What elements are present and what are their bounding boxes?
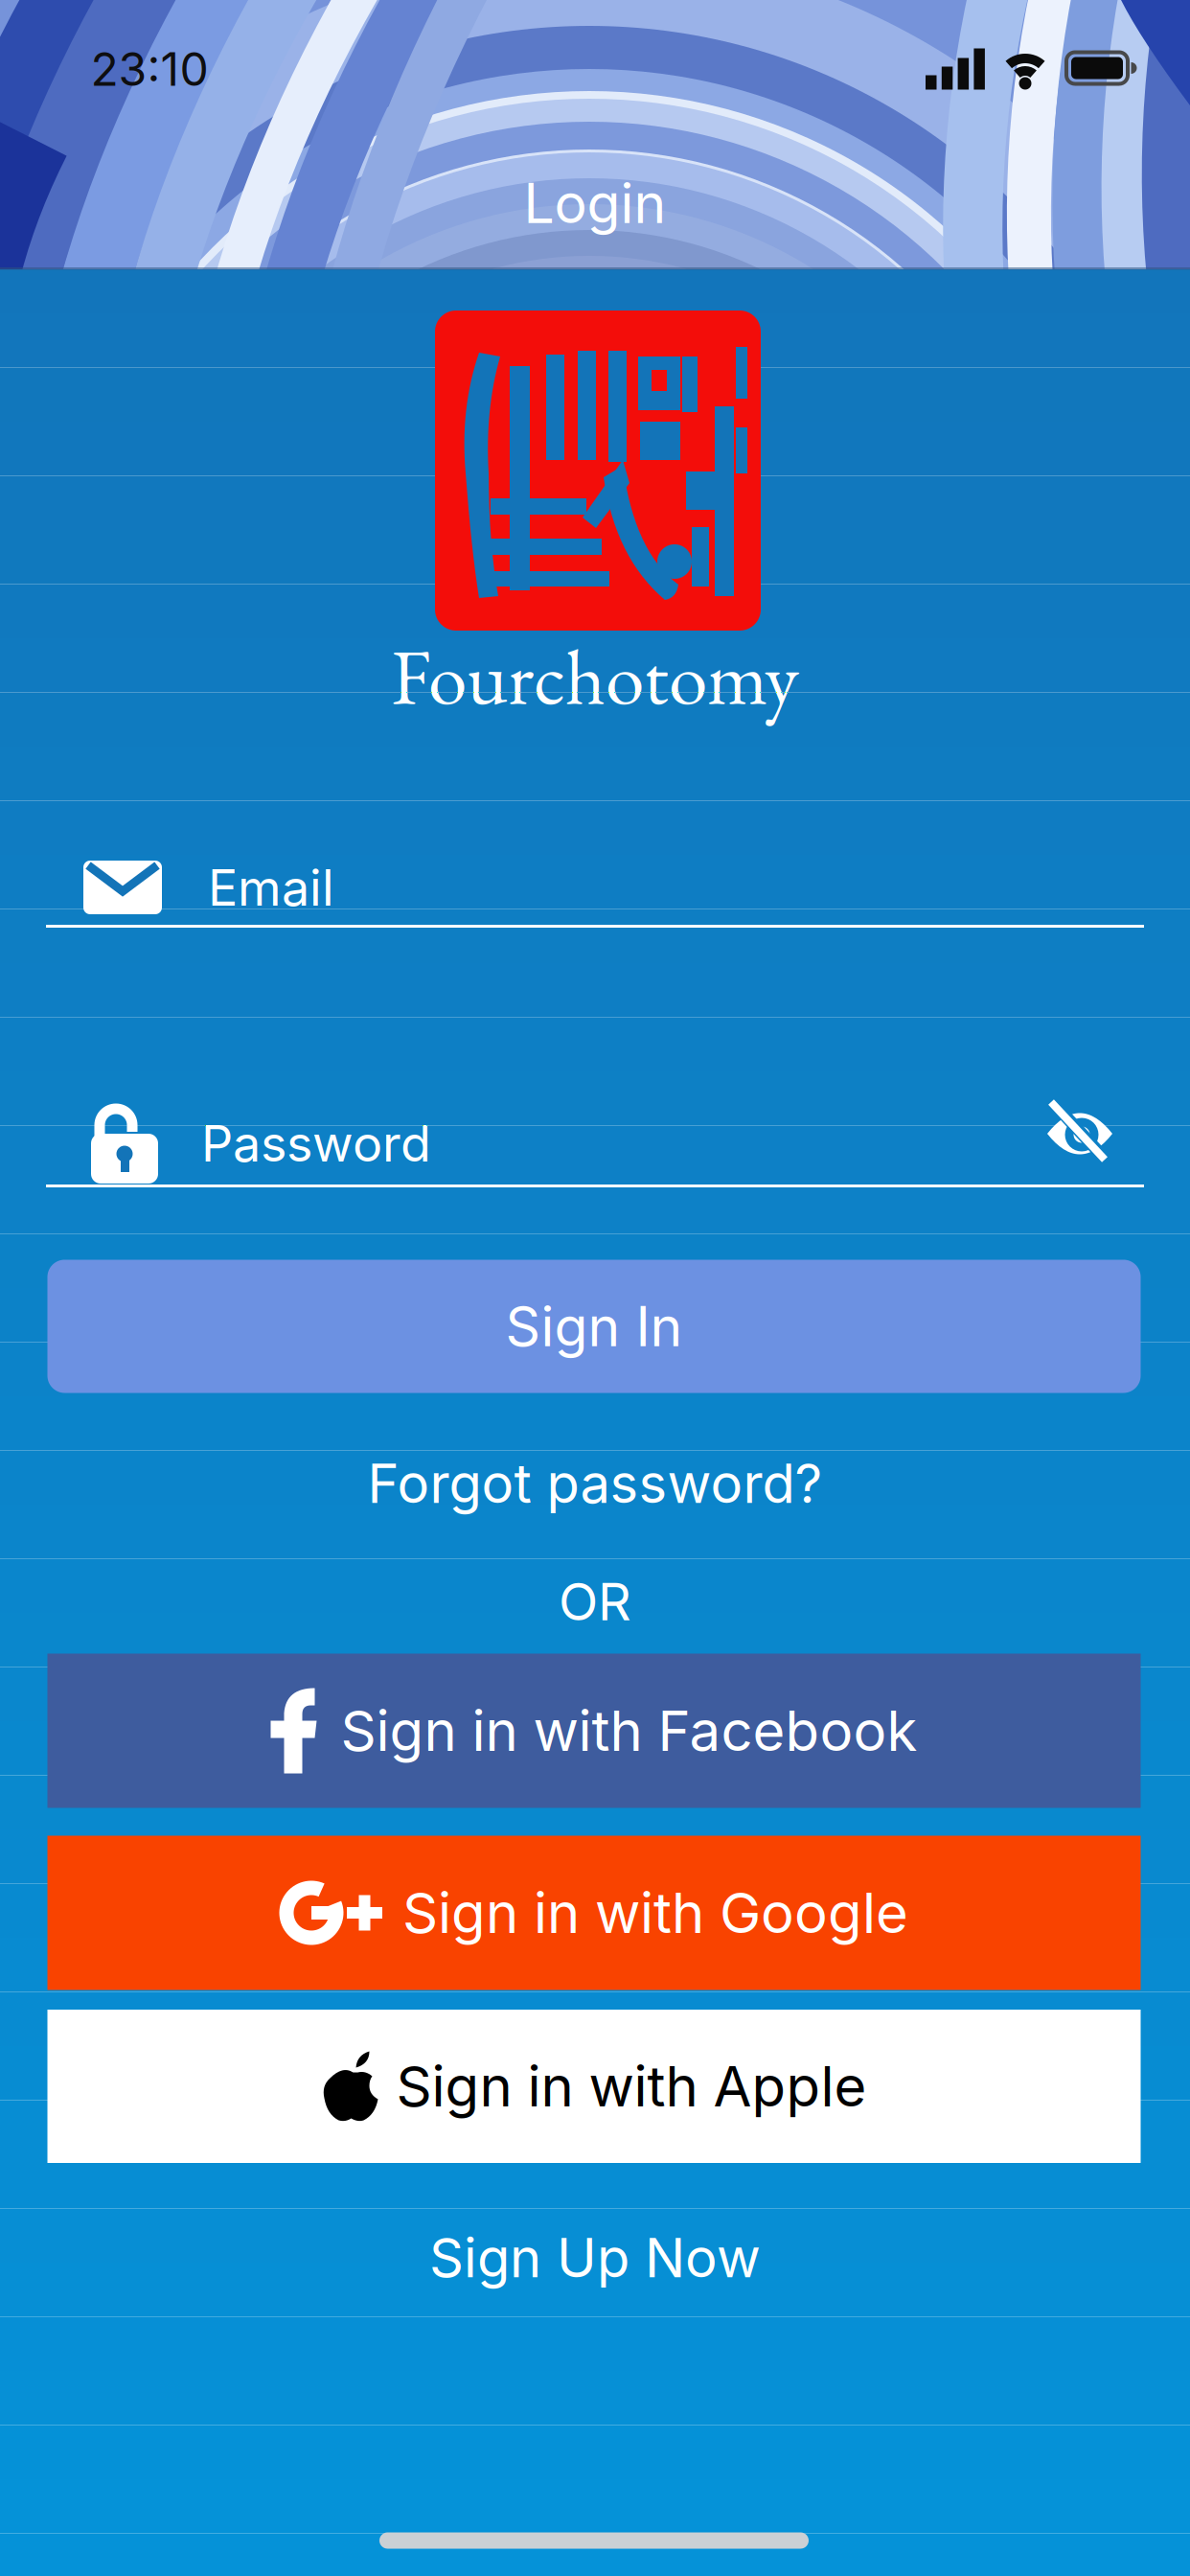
button[interactable]: Password [0, 1092, 1190, 1189]
staticText: 23:10 [91, 41, 208, 97]
button[interactable]: Email [0, 833, 1190, 931]
button[interactable]: Sign in with Google [47, 1836, 1141, 1990]
staticText: Sign Up Now [429, 2225, 761, 2290]
staticText: Fourchotomy [391, 626, 799, 727]
staticText: Forgot password? [367, 1451, 823, 1516]
staticText: Login [524, 170, 666, 236]
staticText: Sign in with Apple [396, 2053, 867, 2120]
staticText: Sign in with Google [402, 1879, 908, 1946]
staticText: Sign in with Facebook [341, 1697, 917, 1764]
staticText: Sign In [505, 1293, 683, 1359]
staticText: Email [208, 857, 334, 918]
button[interactable]: Sign In [47, 1260, 1141, 1393]
button[interactable]: Sign in with Apple [47, 2010, 1141, 2163]
button[interactable]: Forgot password? [116, 1442, 1074, 1525]
staticText: Password [201, 1113, 431, 1173]
staticText: OR [559, 1570, 631, 1633]
button[interactable]: Sign in with Facebook [47, 1654, 1141, 1808]
button[interactable]: Sign Up Now [308, 2215, 882, 2301]
